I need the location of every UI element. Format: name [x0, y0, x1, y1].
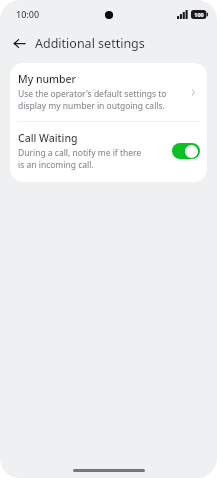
staticText: Use the operator's default settings to d…: [18, 88, 173, 112]
button[interactable]: Back: [6, 30, 32, 56]
staticText: Call Waiting: [18, 131, 78, 145]
staticText: Additional settings: [35, 35, 145, 52]
button[interactable]: Call Waiting toggle: [172, 143, 200, 159]
staticText: 10:00: [16, 8, 40, 20]
staticText: During a call, notify me if there is an …: [18, 147, 147, 171]
staticText: My number: [18, 72, 77, 86]
staticText: 100: [194, 11, 204, 18]
button[interactable]: Call Waiting: [10, 122, 207, 182]
button[interactable]: My number: [10, 63, 207, 121]
